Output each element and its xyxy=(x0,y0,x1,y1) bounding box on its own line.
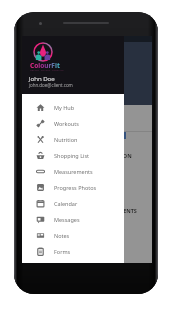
staticText: Shopping List xyxy=(54,152,90,159)
staticText: John Doe xyxy=(29,74,55,82)
staticText: Progress Photos xyxy=(54,184,97,191)
button[interactable]: Forms xyxy=(22,243,124,259)
button[interactable]: Measurements xyxy=(22,163,124,179)
staticText: MEASUREMENTS xyxy=(92,207,137,214)
button[interactable]: Messages xyxy=(22,211,124,227)
button[interactable]: Calendar xyxy=(22,195,124,211)
staticText: Workouts xyxy=(54,120,79,127)
staticText: ColourFit xyxy=(30,61,60,70)
button[interactable]: Progress Photos xyxy=(22,179,124,195)
button[interactable]: Notes xyxy=(22,227,124,243)
button[interactable]: My Hub xyxy=(22,99,124,115)
staticText: Forms xyxy=(54,248,71,255)
staticText: HEALTH . FITNESS . LIFESTYLE xyxy=(30,68,64,71)
button[interactable]: Workouts xyxy=(22,115,124,131)
staticText: john.doe@client.com xyxy=(29,82,73,88)
staticText: Nutrition xyxy=(54,136,78,143)
button[interactable]: Nutrition xyxy=(22,131,124,147)
staticText: My Hub xyxy=(54,104,75,111)
staticText: Calendar xyxy=(54,200,78,207)
staticText: Notes xyxy=(54,232,70,239)
staticText: Measurements xyxy=(54,168,93,175)
staticText: NUTRITION xyxy=(100,152,132,159)
staticText: Messages xyxy=(54,216,80,223)
button[interactable]: Shopping List xyxy=(22,147,124,163)
